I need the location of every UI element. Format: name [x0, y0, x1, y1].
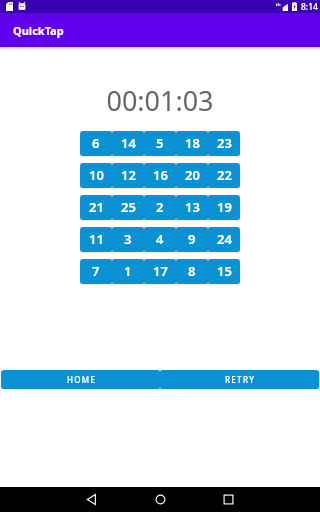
- staticText: 20: [185, 166, 200, 184]
- staticText: QuickTap: [13, 23, 64, 38]
- staticText: 1: [124, 262, 132, 280]
- button[interactable]: Home: [143, 487, 178, 512]
- staticText: 3: [124, 230, 132, 248]
- staticText: 19: [217, 198, 232, 216]
- button[interactable]: 19: [208, 195, 240, 220]
- button[interactable]: 2: [144, 195, 176, 220]
- button[interactable]: 12: [112, 163, 144, 188]
- button[interactable]: 24: [208, 227, 240, 252]
- button[interactable]: Recent apps: [211, 487, 246, 512]
- staticText: HOME: [67, 374, 97, 385]
- button[interactable]: Back: [74, 487, 109, 512]
- button[interactable]: 1: [112, 259, 144, 284]
- staticText: 21: [89, 198, 104, 216]
- button[interactable]: 13: [176, 195, 208, 220]
- staticText: 18: [185, 134, 200, 152]
- staticText: 25: [121, 198, 136, 216]
- staticText: 8:14: [301, 1, 318, 13]
- button[interactable]: 18: [176, 131, 208, 156]
- staticText: 17: [153, 262, 168, 280]
- button[interactable]: HOME: [1, 370, 160, 389]
- button[interactable]: 20: [176, 163, 208, 188]
- staticText: 00:01:03: [0, 82, 320, 119]
- staticText: 2: [156, 198, 164, 216]
- button[interactable]: 6: [80, 131, 112, 156]
- staticText: 10: [89, 166, 104, 184]
- staticText: 15: [217, 262, 232, 280]
- button[interactable]: RETRY: [160, 370, 319, 389]
- button[interactable]: 25: [112, 195, 144, 220]
- button[interactable]: 4: [144, 227, 176, 252]
- staticText: 24: [217, 230, 232, 248]
- staticText: RETRY: [225, 374, 256, 385]
- staticText: 22: [217, 166, 232, 184]
- staticText: 13: [185, 198, 200, 216]
- button[interactable]: 7: [80, 259, 112, 284]
- button[interactable]: 16: [144, 163, 176, 188]
- button[interactable]: 14: [112, 131, 144, 156]
- staticText: 6: [92, 134, 100, 152]
- staticText: 12: [121, 166, 136, 184]
- staticText: 8: [188, 262, 196, 280]
- button[interactable]: 9: [176, 227, 208, 252]
- button[interactable]: 21: [80, 195, 112, 220]
- button[interactable]: 15: [208, 259, 240, 284]
- button[interactable]: 8: [176, 259, 208, 284]
- button[interactable]: 11: [80, 227, 112, 252]
- button[interactable]: 5: [144, 131, 176, 156]
- staticText: 9: [188, 230, 196, 248]
- staticText: 4: [156, 230, 164, 248]
- button[interactable]: 23: [208, 131, 240, 156]
- staticText: 23: [217, 134, 232, 152]
- staticText: 11: [89, 230, 104, 248]
- button[interactable]: 17: [144, 259, 176, 284]
- staticText: 5: [156, 134, 164, 152]
- button[interactable]: 3: [112, 227, 144, 252]
- button[interactable]: 10: [80, 163, 112, 188]
- button[interactable]: 22: [208, 163, 240, 188]
- staticText: 14: [121, 134, 136, 152]
- staticText: 16: [153, 166, 168, 184]
- staticText: 7: [92, 262, 100, 280]
